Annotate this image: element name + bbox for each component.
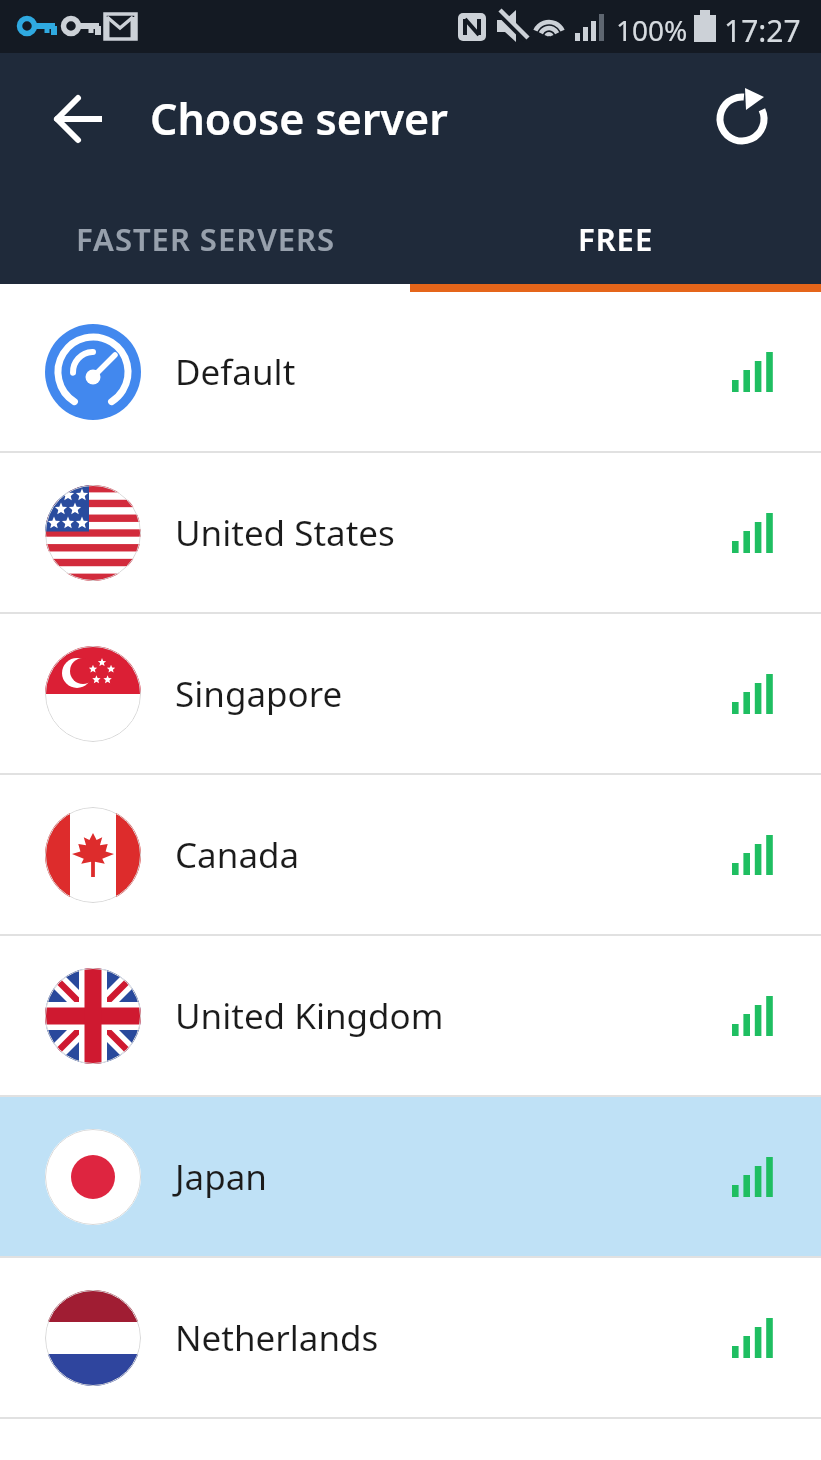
button[interactable]: [711, 64, 821, 174]
staticText: 17:27: [724, 10, 801, 51]
button[interactable]: [36, 75, 124, 163]
button[interactable]: FREE: [410, 184, 821, 284]
button[interactable]: Default: [0, 292, 821, 451]
staticText: United States: [175, 509, 395, 557]
staticText: FASTER SERVERS: [76, 218, 335, 260]
button[interactable]: United Kingdom: [0, 936, 821, 1095]
staticText: Japan: [175, 1153, 267, 1201]
staticText: 100%: [616, 11, 688, 49]
staticText: FREE: [578, 218, 654, 260]
staticText: Netherlands: [175, 1314, 379, 1362]
button[interactable]: Japan: [0, 1097, 821, 1256]
button[interactable]: Netherlands: [0, 1258, 821, 1417]
button[interactable]: Canada: [0, 775, 821, 934]
staticText: Choose server: [150, 89, 448, 148]
button[interactable]: United States: [0, 453, 821, 612]
button[interactable]: Singapore: [0, 614, 821, 773]
button[interactable]: FASTER SERVERS: [0, 184, 410, 284]
staticText: United Kingdom: [175, 992, 444, 1040]
staticText: Default: [175, 348, 296, 396]
staticText: Singapore: [175, 670, 343, 718]
staticText: Canada: [175, 831, 300, 879]
